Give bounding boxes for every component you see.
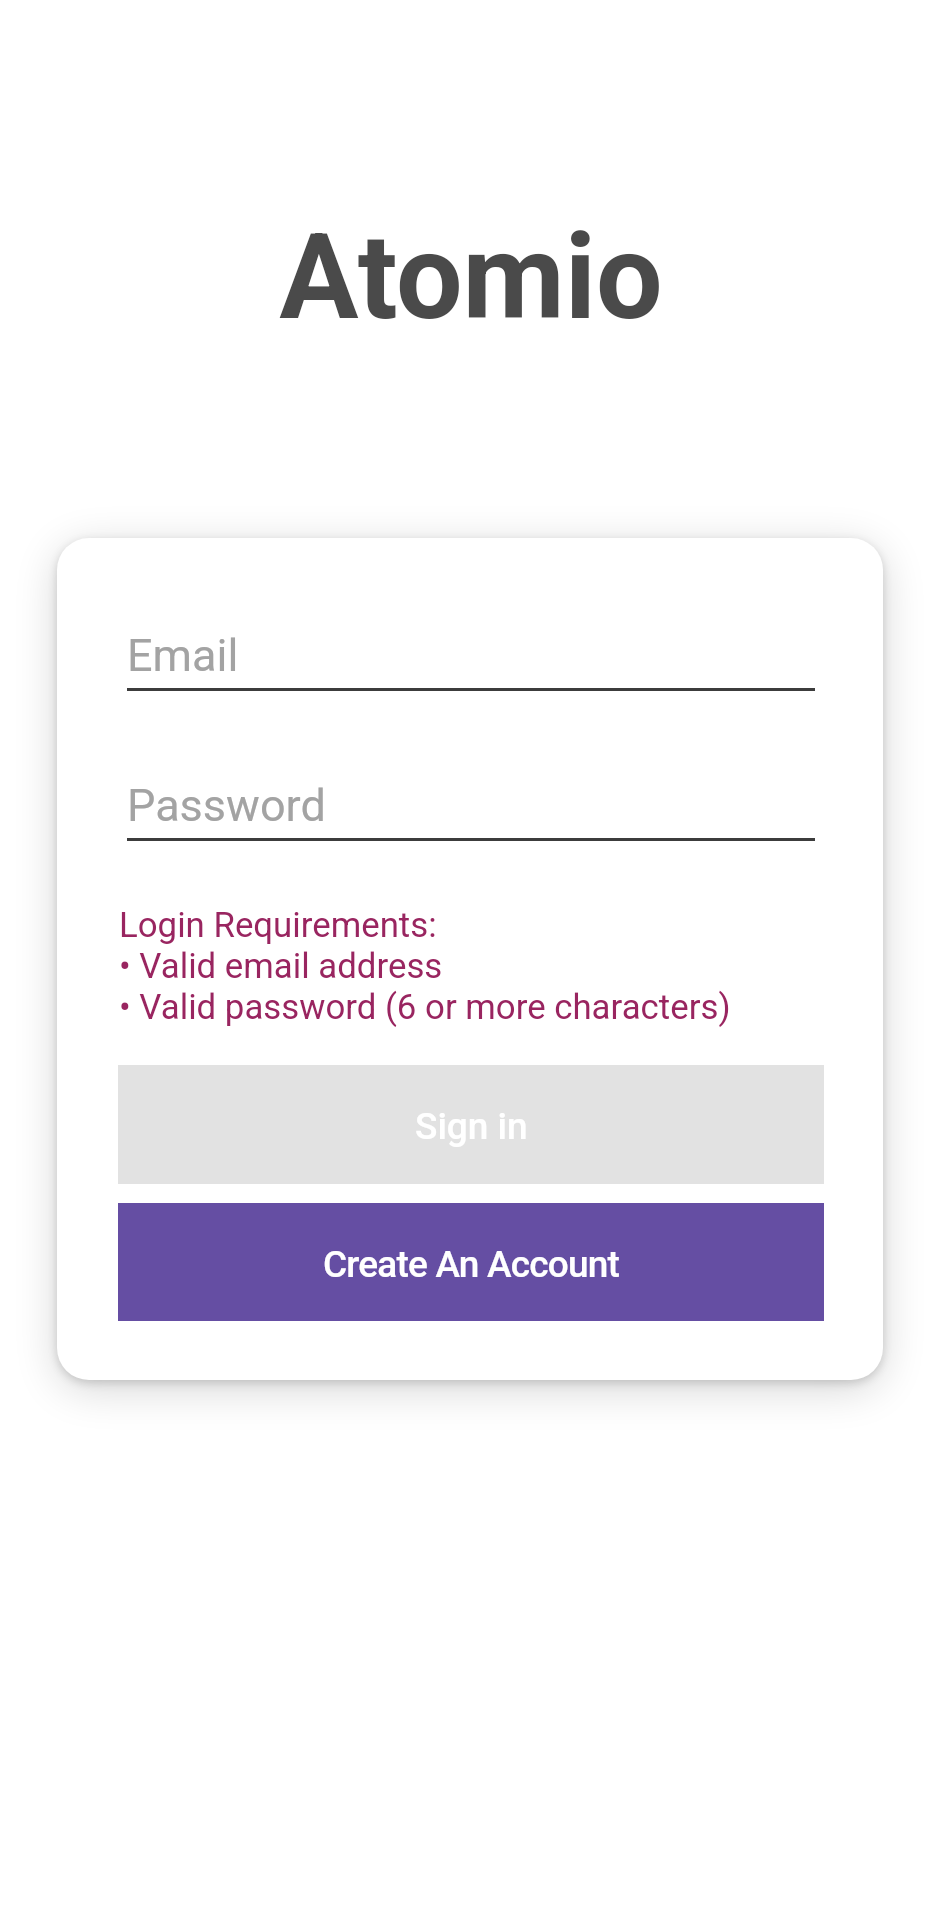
staticText: Sign in — [415, 1105, 528, 1148]
button[interactable]: Email — [127, 624, 815, 686]
staticText: Atomio — [0, 209, 942, 347]
button[interactable]: Password — [127, 774, 815, 836]
button[interactable]: Create An Account — [118, 1203, 824, 1321]
button[interactable]: Sign in — [118, 1065, 824, 1184]
staticText: Password — [127, 779, 326, 832]
staticText: Create An Account — [323, 1243, 620, 1286]
staticText: Login Requirements: • Valid email addres… — [119, 905, 731, 1028]
staticText: Email — [127, 629, 239, 682]
